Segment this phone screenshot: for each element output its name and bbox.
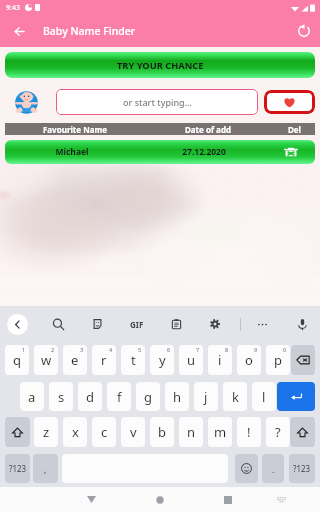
button[interactable]: Home bbox=[146, 487, 173, 512]
button[interactable]: ! bbox=[237, 417, 261, 447]
staticText: b bbox=[158, 423, 166, 441]
button[interactable]: Reset bbox=[290, 17, 318, 45]
staticText: 5 bbox=[138, 346, 142, 353]
button[interactable]: sticker bbox=[84, 311, 110, 337]
button[interactable]: x bbox=[63, 417, 87, 447]
button[interactable]: i bbox=[208, 345, 232, 375]
button[interactable]: z bbox=[34, 417, 58, 447]
staticText: 3 bbox=[80, 346, 84, 353]
button[interactable]: w bbox=[34, 345, 58, 375]
button[interactable]: p bbox=[266, 345, 290, 375]
button[interactable]: more bbox=[249, 311, 275, 337]
button[interactable]: e bbox=[63, 345, 87, 375]
button[interactable]: Expand toolbar bbox=[4, 311, 31, 338]
staticText: q bbox=[13, 351, 21, 369]
button[interactable]: Random name bbox=[13, 89, 40, 115]
button[interactable]: l bbox=[252, 382, 276, 411]
staticText: y bbox=[159, 351, 166, 369]
staticText: Del bbox=[272, 124, 317, 135]
button[interactable]: b bbox=[150, 417, 174, 447]
button[interactable]: clip bbox=[163, 311, 189, 337]
staticText: Favourite Name bbox=[2, 124, 148, 135]
button[interactable]: j bbox=[194, 382, 218, 411]
button[interactable]: q bbox=[5, 345, 29, 375]
button[interactable]: TRY YOUR CHANCE bbox=[5, 52, 315, 78]
staticText: z bbox=[43, 423, 50, 441]
staticText: a bbox=[28, 388, 36, 406]
staticText: TRY YOUR CHANCE bbox=[117, 59, 204, 72]
button[interactable]: settings bbox=[202, 311, 228, 337]
staticText: Baby Name Finder bbox=[43, 24, 136, 38]
button[interactable]: h bbox=[165, 382, 189, 411]
staticText: p bbox=[274, 351, 282, 369]
staticText: 2 bbox=[51, 346, 55, 353]
button[interactable]: d bbox=[78, 382, 102, 411]
button[interactable]: Delete bbox=[269, 140, 312, 164]
button[interactable]: y bbox=[150, 345, 174, 375]
staticText: 1 bbox=[22, 346, 26, 353]
button[interactable]: m bbox=[208, 417, 232, 447]
button[interactable]: search bbox=[45, 311, 71, 337]
staticText: ?123 bbox=[9, 463, 27, 474]
staticText: or start typing... bbox=[123, 96, 192, 108]
staticText: r bbox=[101, 351, 107, 369]
button[interactable]: o bbox=[237, 345, 261, 375]
button[interactable]: enter bbox=[277, 382, 315, 411]
staticText: f bbox=[117, 388, 122, 406]
button[interactable]: a bbox=[20, 382, 44, 411]
button[interactable]: k bbox=[223, 382, 247, 411]
staticText: t bbox=[131, 351, 136, 369]
staticText: 27.12.2020 bbox=[142, 146, 266, 158]
staticText: k bbox=[232, 388, 239, 406]
staticText: 4 bbox=[109, 346, 113, 353]
button[interactable]: u bbox=[179, 345, 203, 375]
staticText: . bbox=[272, 463, 275, 475]
staticText: m bbox=[214, 423, 227, 441]
staticText: 0 bbox=[283, 346, 287, 353]
button[interactable]: ?123 bbox=[289, 454, 315, 483]
staticText: 9 bbox=[254, 346, 258, 353]
staticText: s bbox=[58, 388, 65, 406]
staticText: i bbox=[218, 351, 222, 369]
button[interactable]: backspace bbox=[291, 345, 315, 375]
staticText: v bbox=[130, 423, 137, 441]
button[interactable]: shift bbox=[5, 417, 30, 447]
button[interactable]: ? bbox=[266, 417, 290, 447]
staticText: j bbox=[204, 388, 208, 406]
staticText: Date of add bbox=[146, 124, 270, 135]
button[interactable]: Recents bbox=[214, 487, 241, 512]
button[interactable]: or start typing... bbox=[56, 89, 258, 115]
staticText: h bbox=[173, 388, 182, 406]
button[interactable]: . bbox=[262, 454, 284, 483]
staticText: ! bbox=[247, 423, 251, 441]
button[interactable]: t bbox=[121, 345, 145, 375]
button[interactable]: gif bbox=[124, 311, 150, 337]
button[interactable]: f bbox=[107, 382, 131, 411]
staticText: n bbox=[187, 423, 196, 441]
staticText: 8 bbox=[225, 346, 229, 353]
button[interactable]: ?123 bbox=[5, 454, 30, 483]
button[interactable]: s bbox=[49, 382, 73, 411]
staticText: , bbox=[44, 463, 47, 475]
button[interactable]: , bbox=[33, 454, 58, 483]
button[interactable]: r bbox=[92, 345, 116, 375]
button[interactable]: g bbox=[136, 382, 160, 411]
button[interactable]: Hide keyboard bbox=[268, 487, 295, 512]
staticText: ?123 bbox=[293, 463, 311, 474]
button[interactable]: n bbox=[179, 417, 203, 447]
button[interactable]: Favourites bbox=[264, 90, 315, 114]
button[interactable]: c bbox=[92, 417, 116, 447]
staticText: 9:43 bbox=[6, 3, 20, 13]
button[interactable]: mic bbox=[289, 311, 315, 337]
button[interactable]: Back bbox=[5, 17, 33, 45]
staticText: 6 bbox=[167, 346, 171, 353]
button[interactable]: Emoji bbox=[235, 454, 258, 483]
staticText: o bbox=[245, 351, 253, 369]
button[interactable]: Michael bbox=[5, 140, 315, 164]
staticText: e bbox=[71, 351, 79, 369]
button[interactable]: v bbox=[121, 417, 145, 447]
staticText: ? bbox=[275, 423, 281, 441]
button[interactable]: shift bbox=[290, 417, 315, 447]
button[interactable]: Back bbox=[78, 487, 105, 512]
